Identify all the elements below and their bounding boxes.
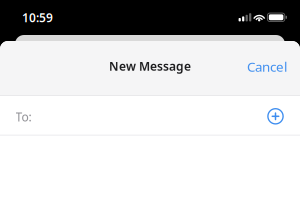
button[interactable]: To:	[0, 96, 256, 135]
staticText: Cancel	[247, 58, 287, 75]
staticText: 10:59	[22, 9, 53, 25]
staticText: New Message	[109, 58, 191, 74]
button[interactable]: Add contact	[256, 96, 300, 135]
button[interactable]: Cancel	[233, 47, 300, 89]
staticText: To:	[15, 109, 31, 125]
